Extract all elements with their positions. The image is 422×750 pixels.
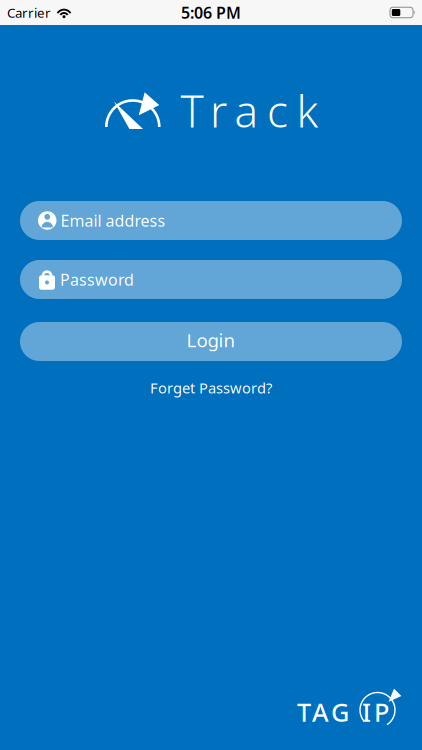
button[interactable]: Email address: [20, 201, 402, 240]
button[interactable]: Password: [20, 260, 402, 299]
staticText: 5:06 PM: [181, 2, 241, 23]
staticText: Login: [186, 328, 235, 352]
staticText: TAG IP: [297, 695, 389, 729]
staticText: Password: [60, 269, 134, 290]
staticText: Email address: [60, 210, 165, 231]
staticText: Carrier: [7, 4, 51, 21]
button[interactable]: Forget Password?: [150, 378, 272, 397]
staticText: Track: [180, 81, 318, 140]
staticText: Forget Password?: [150, 378, 272, 397]
button[interactable]: Login: [20, 322, 402, 361]
